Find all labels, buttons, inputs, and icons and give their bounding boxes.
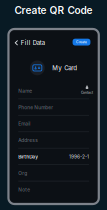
staticText: Address: [18, 137, 38, 143]
staticText: Phone Number: [18, 104, 53, 110]
staticText: BirthDay: [18, 154, 38, 160]
button[interactable]: Fill Data: [15, 38, 49, 47]
button[interactable]: Contact: [80, 85, 94, 94]
staticText: Email: [18, 121, 30, 127]
staticText: Fill Data: [21, 39, 45, 46]
staticText: Contact: [81, 91, 93, 94]
staticText: Create: [76, 40, 87, 44]
staticText: 1996-2-1: [69, 154, 89, 160]
staticText: Org: [18, 170, 27, 176]
staticText: Create QR Code: [14, 4, 92, 16]
staticText: Note: [18, 187, 30, 193]
staticText: Name: [18, 88, 32, 94]
staticText: My Card: [52, 64, 77, 72]
button[interactable]: Create: [73, 39, 90, 45]
